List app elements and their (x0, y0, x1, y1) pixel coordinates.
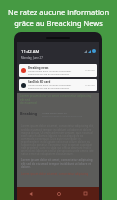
staticText: SanDisk SD card (28, 80, 51, 84)
staticText: Ne ratez aucune information grâce au Bre… (0, 7, 117, 28)
button[interactable]: Back (17, 187, 45, 200)
button[interactable]: Home (45, 187, 72, 200)
staticText: Monday, June 27 (21, 56, 43, 60)
staticText: 11:42 AM (85, 84, 95, 87)
staticText: Lorem ipsum dolor sit amet, consectetur … (21, 172, 89, 176)
button[interactable]: Recent apps (72, 187, 99, 200)
staticText: Lorem ipsum dolor sit amet consectetur a… (20, 94, 96, 104)
staticText: amet consectetur adipiscing elit sed (42, 114, 83, 117)
button[interactable]: Breaking news (19, 64, 97, 77)
button[interactable]: SanDisk SD card (19, 79, 97, 91)
staticText: Lorem ipsum dolor sit (42, 111, 67, 114)
staticText: Lorem ipsum dolor sit amet, consectetur … (21, 124, 95, 155)
staticText: Lorem ipsum dolor sit amet consectetur a… (28, 70, 72, 76)
staticText: Breaking (20, 111, 38, 116)
staticText: 11:42 AM (21, 49, 40, 55)
staticText: Lorem ipsum dolor sit amet, consectetur … (21, 158, 95, 168)
staticText: Breaking news (28, 66, 49, 70)
staticText: 11:42 AM (85, 69, 95, 72)
staticText: Lorem ipsum dolor sit amet consectetur a… (28, 84, 72, 90)
